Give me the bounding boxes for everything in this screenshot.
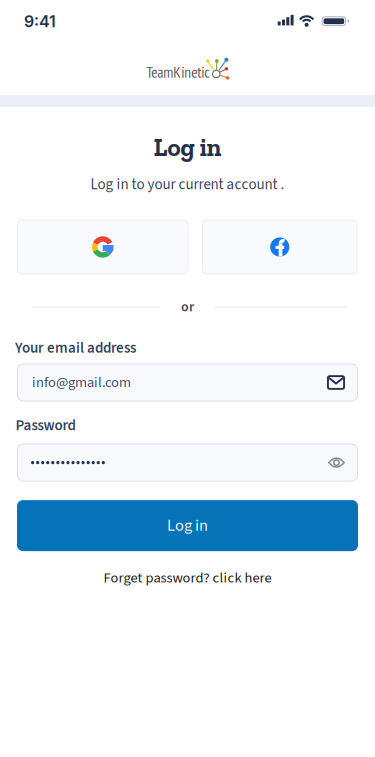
staticText: Log in (153, 132, 221, 162)
button[interactable]: Log in (17, 500, 358, 551)
staticText: Forget password? click here (103, 568, 271, 588)
staticText: Password (15, 415, 75, 436)
staticText: TeamKinetic (146, 62, 210, 82)
button[interactable]: Forget password? click here (103, 568, 271, 588)
button[interactable]: Show password (328, 457, 358, 468)
button[interactable]: Log in with Google (17, 219, 188, 274)
staticText: or (181, 297, 194, 317)
staticText: Log in to your current account . (90, 174, 284, 195)
button[interactable]: Log in with Facebook (202, 219, 357, 274)
staticText: 9:41 (24, 12, 56, 31)
staticText: Log in (167, 514, 208, 537)
staticText: Your email address (15, 337, 136, 359)
staticText: info@gmail.com (32, 372, 131, 393)
